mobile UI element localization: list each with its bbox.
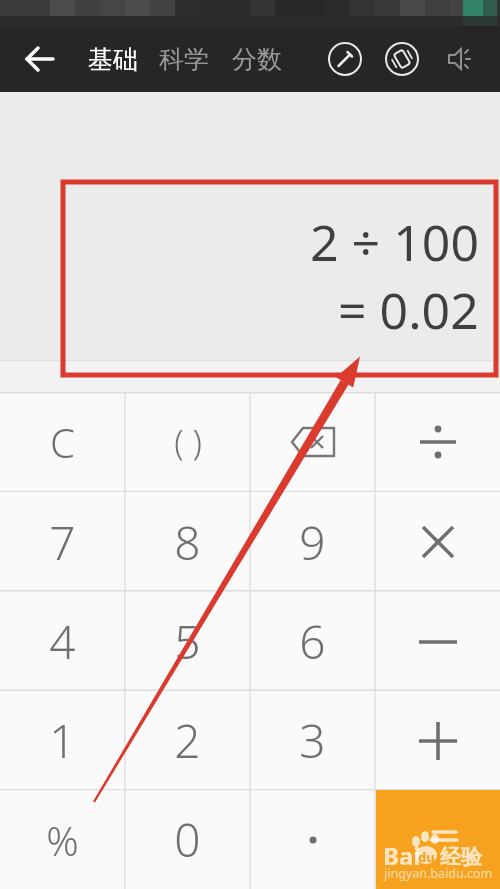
button[interactable]: 0 <box>125 790 250 889</box>
button[interactable]: = <box>375 790 500 889</box>
button[interactable] <box>328 42 362 76</box>
button[interactable]: Bai <box>376 790 500 889</box>
button[interactable]: ( ) <box>125 392 250 492</box>
staticText: 0 <box>174 808 201 871</box>
button[interactable] <box>375 691 500 790</box>
button[interactable]: 2 <box>125 691 250 790</box>
button[interactable]: 基础 <box>88 44 138 75</box>
staticText: 4 <box>49 610 76 673</box>
staticText: 6 <box>299 610 326 673</box>
button[interactable]: 6 <box>250 592 375 691</box>
staticText: ( ) <box>174 419 202 465</box>
button[interactable]: 1 <box>0 691 125 790</box>
button[interactable]: 7 <box>0 492 125 592</box>
staticText: 3 <box>299 709 326 772</box>
staticText: C <box>50 415 75 469</box>
button[interactable] <box>375 392 500 492</box>
button[interactable]: 3 <box>250 691 375 790</box>
button[interactable]: C <box>0 392 125 492</box>
staticText: Bai <box>383 839 421 872</box>
staticText: 8 <box>174 511 201 574</box>
staticText: 5 <box>174 610 201 673</box>
staticText: = 0.02 <box>338 276 479 344</box>
staticText: = <box>426 811 450 868</box>
button[interactable] <box>375 492 500 592</box>
button[interactable]: 8 <box>125 492 250 592</box>
button[interactable]: 4 <box>0 592 125 691</box>
button[interactable]: % <box>0 790 125 889</box>
staticText: 经验 <box>440 844 482 870</box>
button[interactable] <box>375 592 500 691</box>
staticText: du <box>418 848 435 866</box>
button[interactable]: 5 <box>125 592 250 691</box>
staticText: 2 <box>174 709 201 772</box>
button[interactable] <box>27 46 53 72</box>
staticText: jingyan.baidu.com <box>384 865 493 882</box>
staticText: 1 <box>49 709 76 772</box>
button[interactable]: 分数 <box>232 44 282 75</box>
button[interactable] <box>385 42 419 76</box>
button[interactable]: 科学 <box>159 44 209 75</box>
staticText: 2 ÷ 100 <box>310 208 479 276</box>
staticText: % <box>46 813 79 867</box>
button[interactable]: 9 <box>250 492 375 592</box>
button[interactable] <box>250 790 375 889</box>
button[interactable] <box>443 43 475 75</box>
staticText: 7 <box>49 511 76 574</box>
staticText: 9 <box>299 511 326 574</box>
button[interactable] <box>250 392 375 492</box>
